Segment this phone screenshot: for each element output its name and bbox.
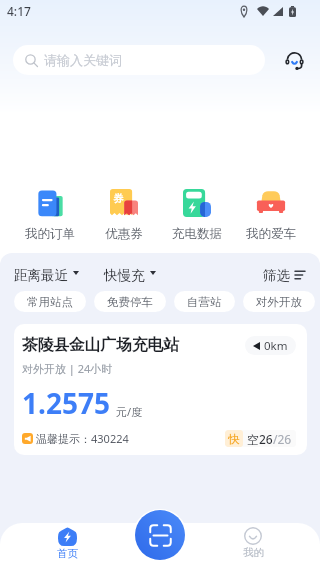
button[interactable]: 我的爱车 xyxy=(241,187,301,242)
staticText: 1.2575 xyxy=(22,384,110,422)
button[interactable]: 我的订单 xyxy=(20,187,80,242)
button[interactable]: 请输入关键词 xyxy=(13,45,265,75)
staticText: 常用站点 xyxy=(27,295,73,309)
staticText: 请输入关键词 xyxy=(44,52,122,68)
button[interactable]: 充电数据 xyxy=(167,187,227,242)
staticText: /26 xyxy=(273,431,292,447)
staticText: 券 xyxy=(113,192,123,205)
button[interactable]: 我的 xyxy=(227,523,279,559)
button[interactable]: 茶陵县金山广场充电站 xyxy=(14,324,307,455)
button[interactable]: 免费停车 xyxy=(94,291,166,312)
button[interactable]: 扫一扫 xyxy=(135,510,185,560)
button[interactable]: 常用站点 xyxy=(14,291,86,312)
staticText: 我的 xyxy=(243,546,264,559)
staticText: 我的爱车 xyxy=(246,226,296,242)
staticText: 首页 xyxy=(57,547,78,560)
button[interactable]: 筛选 xyxy=(263,265,305,285)
staticText: 自营站 xyxy=(187,295,222,309)
staticText: 充电数据 xyxy=(172,226,222,242)
staticText: 快慢充 xyxy=(104,267,145,284)
staticText: 温馨提示：430224 xyxy=(36,431,129,446)
staticText: 我的订单 xyxy=(25,226,75,242)
staticText: 元/度 xyxy=(116,404,143,419)
staticText: 快 xyxy=(228,432,240,446)
button[interactable]: 快慢充 xyxy=(104,265,156,285)
staticText: 4:17 xyxy=(7,3,31,19)
button[interactable]: 对外开放 xyxy=(243,291,315,312)
button[interactable]: 首页 xyxy=(41,523,93,560)
staticText: 筛选 xyxy=(263,267,290,284)
staticText: 对外开放 | 24小时 xyxy=(22,361,113,376)
staticText: 对外开放 xyxy=(256,295,302,309)
staticText: 空26 xyxy=(247,431,273,447)
staticText: 距离最近 xyxy=(14,267,68,284)
button[interactable]: 券 xyxy=(94,187,154,242)
button[interactable]: 在线客服 xyxy=(282,48,306,72)
staticText: 优惠券 xyxy=(105,226,143,242)
staticText: 茶陵县金山广场充电站 xyxy=(22,335,179,355)
button[interactable]: 距离最近 xyxy=(14,265,79,285)
staticText: 免费停车 xyxy=(107,295,153,309)
staticText: 0km xyxy=(264,338,288,354)
button[interactable]: 0km xyxy=(245,336,296,355)
button[interactable]: 自营站 xyxy=(174,291,235,312)
